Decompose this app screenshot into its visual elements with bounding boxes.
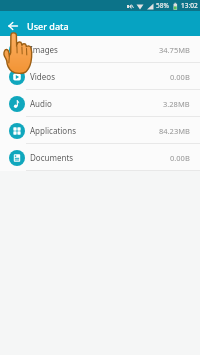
- staticText: 58%: [156, 1, 169, 10]
- staticText: Applications: [30, 125, 76, 136]
- staticText: Audio: [30, 98, 52, 109]
- staticText: 13:02: [181, 1, 198, 10]
- staticText: 3.28MB: [163, 99, 190, 109]
- staticText: 0.00B: [170, 72, 190, 82]
- staticText: 84.23MB: [159, 126, 190, 136]
- staticText: 34.75MB: [159, 45, 190, 55]
- staticText: Images: [30, 44, 58, 55]
- staticText: Documents: [30, 152, 74, 163]
- staticText: User data: [27, 20, 69, 32]
- staticText: 0.00B: [170, 153, 190, 163]
- staticText: Videos: [30, 71, 55, 82]
